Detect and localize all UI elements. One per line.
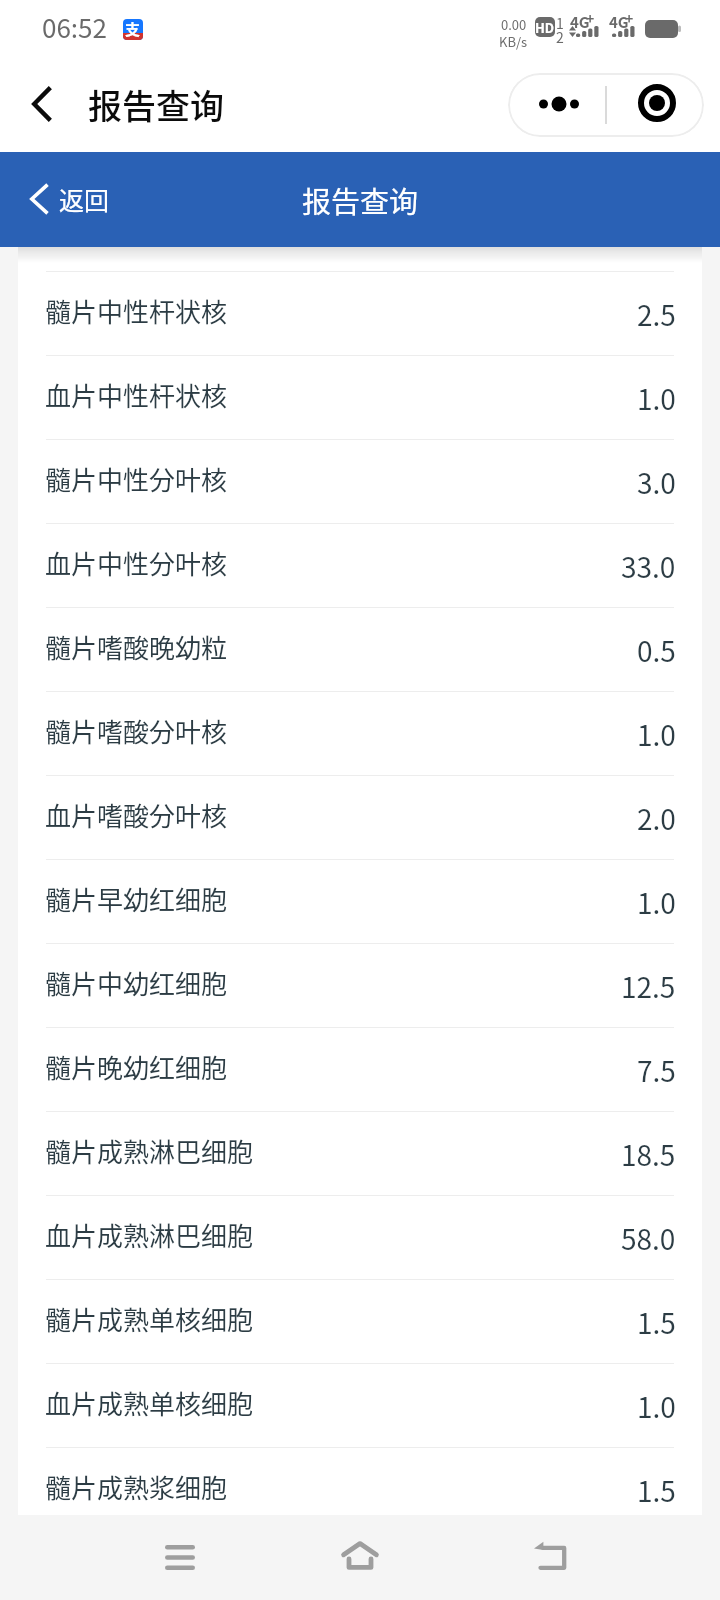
button[interactable]: 返回 [20, 170, 120, 230]
staticText: 0.00 [501, 15, 527, 34]
staticText: + [586, 8, 595, 28]
button[interactable]: 血片中性分叶核 [46, 524, 674, 607]
button[interactable]: 髓片成熟单核细胞 [46, 1280, 674, 1363]
staticText: 报告查询 [88, 80, 224, 129]
button[interactable]: 髓片成熟淋巴细胞 [46, 1112, 674, 1195]
staticText: 髓片早幼红细胞 [45, 880, 228, 918]
staticText: 2 [556, 27, 564, 47]
staticText: 1.5 [637, 1470, 676, 1511]
button[interactable]: 髓片晚幼红细胞 [46, 1028, 674, 1111]
staticText: 1.0 [637, 378, 676, 419]
other: Back [32, 87, 51, 121]
staticText: 1.0 [637, 882, 676, 923]
staticText: 7.5 [637, 1050, 676, 1091]
staticText: 髓片嗜酸分叶核 [45, 712, 228, 750]
button[interactable]: Close mini program [607, 73, 704, 137]
staticText: 1 [556, 13, 564, 33]
button[interactable]: Recent apps [140, 1515, 220, 1600]
button[interactable]: Home [320, 1515, 400, 1600]
staticText: 血片成熟淋巴细胞 [45, 1216, 254, 1254]
staticText: 2.0 [637, 798, 676, 839]
staticText: 血片中性分叶核 [45, 544, 228, 582]
staticText: 髓片成熟淋巴细胞 [45, 1132, 254, 1170]
staticText: 报告查询 [302, 179, 419, 221]
staticText: 2.5 [637, 294, 676, 335]
staticText: HD [535, 18, 555, 37]
staticText: 髓片晚幼红细胞 [45, 1048, 228, 1086]
staticText: 血片嗜酸分叶核 [45, 796, 228, 834]
button[interactable]: 髓片中幼红细胞 [46, 944, 674, 1027]
staticText: 血片中性杆状核 [45, 376, 228, 414]
staticText: 1.0 [637, 714, 676, 755]
staticText: 返回 [59, 181, 110, 217]
staticText: 58.0 [621, 1218, 676, 1259]
button[interactable]: Back [22, 72, 229, 141]
staticText: 髓片成熟浆细胞 [45, 1468, 228, 1506]
staticText: 髓片成熟单核细胞 [45, 1300, 254, 1338]
staticText: 0.5 [637, 630, 676, 671]
button[interactable]: 血片嗜酸分叶核 [46, 776, 674, 859]
staticText: 1.0 [637, 1386, 676, 1427]
button[interactable]: 血片中性杆状核 [46, 356, 674, 439]
button[interactable]: 髓片嗜酸分叶核 [46, 692, 674, 775]
staticText: 髓片中性杆状核 [45, 292, 228, 330]
button[interactable]: 血片成熟单核细胞 [46, 1364, 674, 1447]
staticText: 3.0 [637, 462, 676, 503]
staticText: + [625, 8, 634, 28]
staticText: 支 [125, 19, 141, 39]
staticText: 12.5 [621, 966, 676, 1007]
staticText: 髓片嗜酸晚幼粒 [45, 628, 228, 666]
staticText: 33.0 [621, 546, 676, 587]
staticText: 1.5 [637, 1302, 676, 1343]
staticText: KB/s [499, 32, 528, 51]
staticText: 4G [609, 11, 629, 33]
button[interactable]: 髓片中性分叶核 [46, 440, 674, 523]
staticText: 血片成熟单核细胞 [45, 1384, 254, 1422]
staticText: 髓片中幼红细胞 [45, 964, 228, 1002]
button[interactable]: More options [508, 73, 605, 137]
button[interactable]: 髓片中性杆状核 [46, 272, 674, 355]
button[interactable]: 髓片嗜酸晚幼粒 [46, 608, 674, 691]
button[interactable]: Back [510, 1515, 590, 1600]
button[interactable]: 髓片早幼红细胞 [46, 860, 674, 943]
staticText: 4G [570, 11, 590, 33]
button[interactable]: 血片成熟淋巴细胞 [46, 1196, 674, 1279]
button[interactable]: 髓片成熟浆细胞 [46, 1448, 674, 1531]
staticText: 髓片中性分叶核 [45, 460, 228, 498]
staticText: 18.5 [621, 1134, 676, 1175]
staticText: 06:52 [42, 8, 107, 46]
